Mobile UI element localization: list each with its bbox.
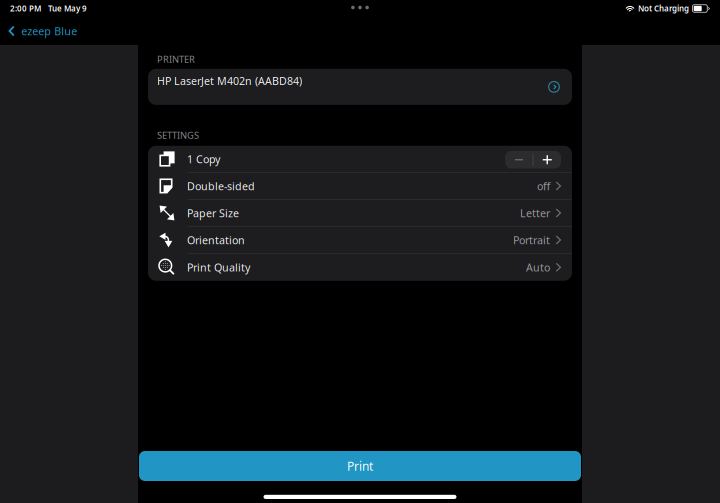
staticText: Portrait — [513, 233, 550, 247]
staticText: Orientation — [187, 233, 245, 247]
staticText: HP LaserJet M402n (AABD84) — [157, 74, 302, 88]
button[interactable]: Double-sided — [148, 173, 572, 200]
staticText: SETTINGS — [157, 129, 199, 141]
button[interactable]: Paper Size — [148, 200, 572, 227]
staticText: Print Quality — [187, 260, 250, 274]
staticText: Not Charging — [638, 3, 689, 14]
button[interactable] — [533, 151, 561, 168]
button[interactable]: ezeep Blue — [0, 17, 85, 45]
staticText: ezeep Blue — [21, 24, 77, 38]
button[interactable]: Print Quality — [148, 254, 572, 281]
button[interactable]: HP LaserJet M402n (AABD84) — [148, 69, 572, 105]
button[interactable]: Print — [139, 451, 581, 481]
button[interactable]: Orientation — [148, 227, 572, 254]
staticText: Tue May 9 — [48, 3, 87, 14]
staticText: Double-sided — [187, 179, 255, 193]
staticText: Letter — [520, 206, 550, 220]
staticText: Auto — [526, 260, 550, 274]
staticText: PRINTER — [157, 53, 195, 65]
staticText: 1 Copy — [187, 152, 220, 166]
staticText: off — [537, 179, 550, 193]
button[interactable]: 1 Copy — [148, 146, 572, 173]
staticText: 2:00 PM — [10, 3, 41, 14]
staticText: Paper Size — [187, 206, 239, 220]
staticText: Print — [347, 458, 373, 474]
button[interactable] — [505, 151, 533, 168]
